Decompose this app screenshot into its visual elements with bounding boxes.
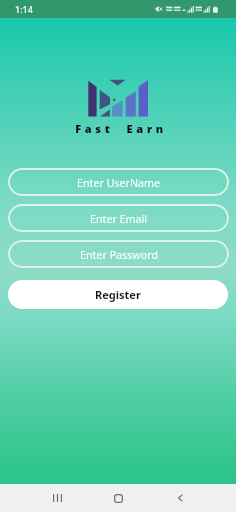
button[interactable]: Home: [100, 484, 136, 512]
staticText: Enter UserName: [77, 176, 161, 191]
button[interactable]: Enter Email: [8, 204, 229, 232]
button[interactable]: Enter Password: [8, 240, 229, 268]
staticText: Register: [95, 287, 141, 302]
staticText: Enter Email: [90, 212, 148, 227]
staticText: Enter Password: [80, 248, 158, 263]
button[interactable]: Back: [162, 484, 198, 512]
button[interactable]: Enter UserName: [8, 168, 229, 196]
button[interactable]: Register: [8, 280, 228, 309]
button[interactable]: Recent apps: [39, 484, 75, 512]
staticText: Fast Earn: [3, 121, 236, 136]
staticText: 1:14: [15, 3, 33, 15]
